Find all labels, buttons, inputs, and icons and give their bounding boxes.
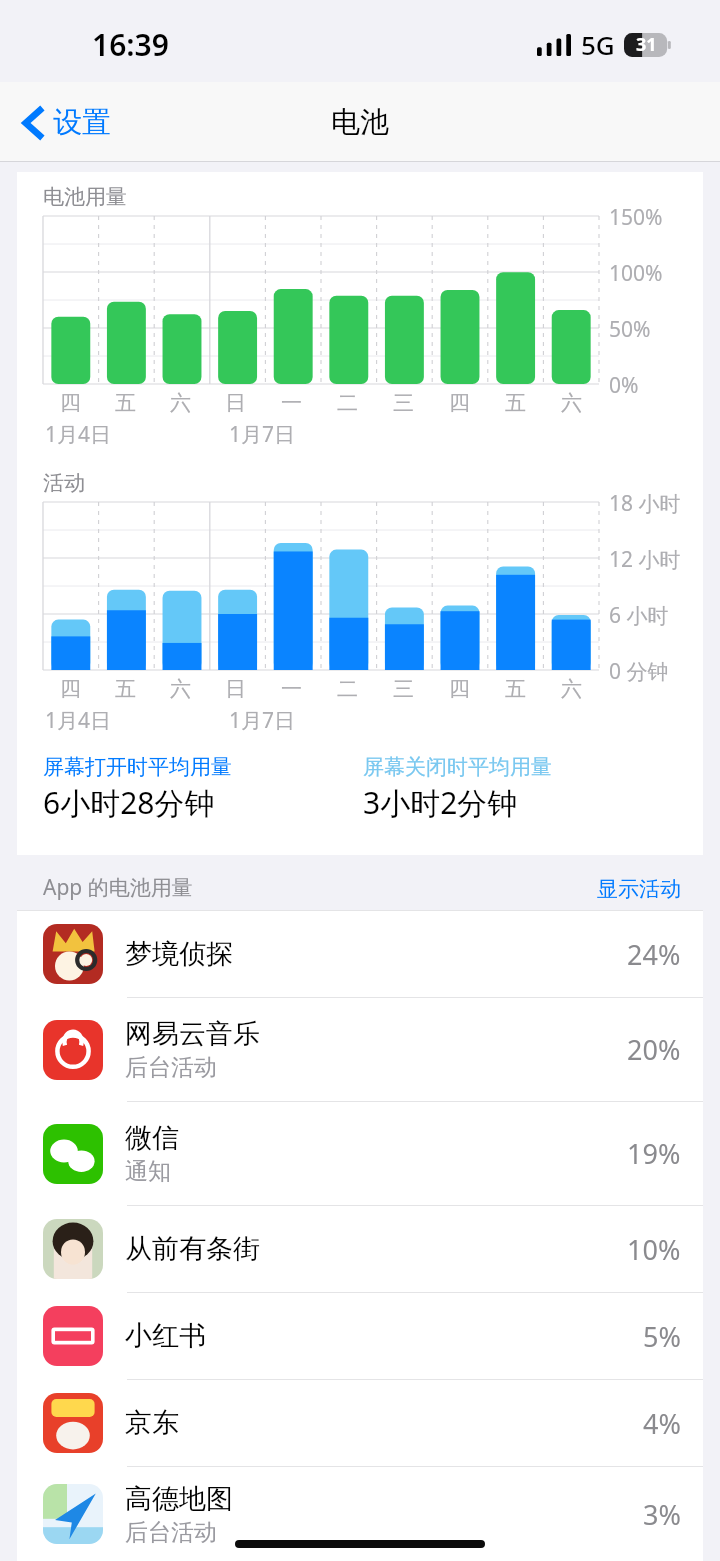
staticText: 20% xyxy=(627,1031,681,1068)
staticText: 四 xyxy=(60,390,81,416)
staticText: 3小时2分钟 xyxy=(363,782,518,823)
button[interactable]: 显示活动 xyxy=(597,876,681,902)
button[interactable]: 网易云音乐 xyxy=(17,998,703,1101)
staticText: 三 xyxy=(393,390,414,416)
staticText: 后台活动 xyxy=(125,1518,217,1547)
staticText: 4% xyxy=(643,1405,681,1442)
staticText: 10% xyxy=(627,1231,681,1268)
staticText: 五 xyxy=(505,390,526,416)
staticText: 31 xyxy=(636,32,657,57)
staticText: 后台活动 xyxy=(125,1053,217,1082)
staticText: App 的电池用量 xyxy=(43,873,597,902)
button[interactable]: 小红书 xyxy=(17,1293,703,1379)
staticText: 五 xyxy=(115,676,136,702)
staticText: 六 xyxy=(170,390,191,416)
staticText: 设置 xyxy=(53,104,111,141)
staticText: 四 xyxy=(60,676,81,702)
staticText: 电池 xyxy=(331,104,389,141)
staticText: 二 xyxy=(337,676,358,702)
staticText: 5% xyxy=(643,1318,681,1355)
staticText: 0 分钟 xyxy=(609,657,669,686)
staticText: 六 xyxy=(561,676,582,702)
staticText: 100% xyxy=(609,259,663,288)
staticText: 16:39 xyxy=(92,24,169,65)
staticText: 屏幕打开时平均用量 xyxy=(43,754,232,780)
staticText: 一 xyxy=(281,676,302,702)
staticText: 五 xyxy=(505,676,526,702)
staticText: 四 xyxy=(449,390,470,416)
staticText: 5G xyxy=(581,27,615,62)
staticText: 1月4日 xyxy=(45,420,112,448)
staticText: 日 xyxy=(225,390,246,416)
staticText: 活动 xyxy=(43,470,85,496)
staticText: 1月4日 xyxy=(45,706,112,734)
staticText: 18 小时 xyxy=(609,489,681,518)
staticText: 24% xyxy=(627,936,681,973)
staticText: 3% xyxy=(643,1496,681,1533)
staticText: 网易云音乐 xyxy=(125,1017,260,1051)
button[interactable]: 高德地图 xyxy=(17,1467,703,1561)
staticText: 6小时28分钟 xyxy=(43,782,215,823)
staticText: 19% xyxy=(627,1135,681,1172)
staticText: 1月7日 xyxy=(229,706,296,734)
staticText: 二 xyxy=(337,390,358,416)
staticText: 六 xyxy=(170,676,191,702)
staticText: 四 xyxy=(449,676,470,702)
staticText: 12 小时 xyxy=(609,545,681,574)
button[interactable]: 从前有条街 xyxy=(17,1206,703,1292)
staticText: 梦境侦探 xyxy=(125,937,233,971)
staticText: 通知 xyxy=(125,1157,171,1186)
staticText: 高德地图 xyxy=(125,1482,233,1516)
button[interactable]: 设置 xyxy=(18,98,117,147)
staticText: 六 xyxy=(561,390,582,416)
staticText: 日 xyxy=(225,676,246,702)
staticText: 三 xyxy=(393,676,414,702)
staticText: 50% xyxy=(609,315,651,344)
staticText: 1月7日 xyxy=(229,420,296,448)
staticText: 京东 xyxy=(125,1406,179,1440)
staticText: 从前有条街 xyxy=(125,1232,260,1266)
staticText: 小红书 xyxy=(125,1319,206,1353)
staticText: 6 小时 xyxy=(609,601,669,630)
button[interactable]: 梦境侦探 xyxy=(17,911,703,997)
staticText: 电池用量 xyxy=(43,184,127,210)
staticText: 五 xyxy=(115,390,136,416)
staticText: 屏幕关闭时平均用量 xyxy=(363,754,552,780)
staticText: 显示活动 xyxy=(597,876,681,902)
staticText: 150% xyxy=(609,203,663,232)
staticText: 0% xyxy=(609,371,639,400)
staticText: 微信 xyxy=(125,1121,179,1155)
button[interactable]: 京东 xyxy=(17,1380,703,1466)
staticText: 一 xyxy=(281,390,302,416)
button[interactable]: 微信 xyxy=(17,1102,703,1205)
